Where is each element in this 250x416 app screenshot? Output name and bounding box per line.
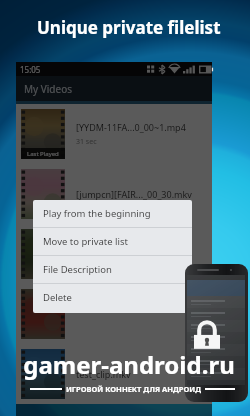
button[interactable]: Move to private list [33,228,192,255]
button[interactable]: File Description [33,256,192,283]
button[interactable] [16,284,212,344]
staticText: test_clip.mkv [76,368,131,380]
button[interactable]: Play from the beginning [33,200,192,227]
staticText: Last Played [27,150,59,158]
staticText: gamer-android.ru [4,348,250,381]
button[interactable]: Delete [33,284,192,311]
staticText: ИГРОВОЙ КОННЕКТ ДЛЯ АНДРОИД [62,384,205,394]
staticText: [jumpcn][FAIR..._00_30.mkv [76,188,192,200]
staticText: File Description [43,263,112,276]
staticText: Move to private list [43,235,128,248]
staticText: Delete [43,291,72,304]
button[interactable]: [jumpcn][FAIR..._00_30.mkv [16,164,212,224]
button[interactable]: test_clip.mkv [16,344,212,404]
staticText: [YYDM-11FA...0_00~1.mp4 [76,121,186,133]
staticText: Unique private filelist [37,16,221,39]
staticText: Play from the beginning [43,207,151,220]
other: Private list phone preview [185,264,248,402]
staticText: My Videos [24,82,72,96]
button[interactable]: My Videos [16,76,212,101]
staticText: 15:05 [20,64,41,75]
button[interactable] [16,224,212,284]
staticText: 31 sec [76,137,97,147]
button[interactable]: Last Played [16,104,212,164]
